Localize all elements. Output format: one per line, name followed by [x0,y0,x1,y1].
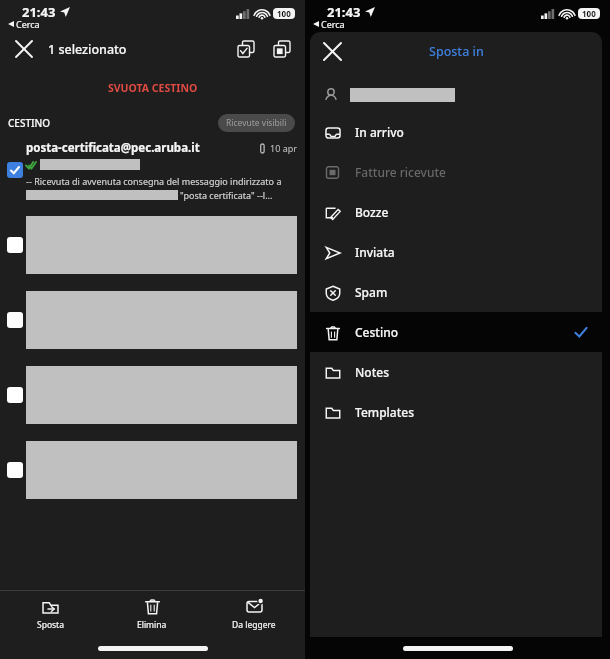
staticText: Da leggere [232,619,276,631]
staticText: Cerca [16,18,40,30]
staticText: Notes [355,364,389,380]
button[interactable]: Bozze [310,192,602,232]
staticText: 100 [582,8,596,19]
button[interactable]: Templates [310,392,602,432]
staticText: Elimina [137,619,167,631]
button[interactable]: posta-certificata@pec.aruba.it [0,136,305,207]
staticText: In arrivo [355,124,404,140]
button[interactable]: Fatture ricevute [310,152,602,192]
button[interactable] [0,432,305,507]
staticText: posta-certificata@pec.aruba.it [26,140,200,156]
staticText: 21:43 [327,3,361,21]
staticText: Templates [355,404,415,420]
button[interactable]: Ricevute visibili [218,114,295,132]
staticText: 100 [277,8,291,19]
staticText: Ricevute visibili [226,117,287,129]
button[interactable]: Inviata [310,232,602,272]
button[interactable] [0,282,305,357]
button[interactable]: Deseleziona [269,36,295,62]
staticText: 1 selezionato [48,41,127,58]
staticText: Sposta in [429,43,484,60]
button[interactable] [0,357,305,432]
button[interactable]: Sposta [0,591,101,637]
button[interactable]: Chiudi [10,35,38,63]
staticText: Inviata [355,244,395,260]
button[interactable]: SVUOTA CESTINO [0,66,305,110]
button[interactable]: Elimina [101,591,203,637]
button[interactable]: Notes [310,352,602,392]
button[interactable]: In arrivo [310,112,602,152]
button[interactable] [310,78,602,112]
button[interactable]: Spam [310,272,602,312]
staticText: SVUOTA CESTINO [108,81,198,95]
staticText: Sposta [37,619,64,631]
button[interactable] [0,207,305,282]
staticText: Fatture ricevute [355,164,446,180]
staticText: CESTINO [8,116,51,130]
staticText: "posta certificata" --l... [180,189,273,201]
staticText: Cestino [355,324,399,340]
staticText: -- Ricevuta di avvenuta consegna del mes… [26,175,282,187]
button[interactable]: Seleziona tutto [233,36,259,62]
staticText: 10 apr [270,142,297,154]
button[interactable]: Cestino [310,312,602,352]
staticText: Bozze [355,204,389,220]
staticText: 21:43 [22,3,56,21]
staticText: Spam [355,284,388,300]
button[interactable]: Chiudi [318,37,346,65]
button[interactable]: Da leggere [203,591,305,637]
staticText: Cerca [321,18,345,30]
